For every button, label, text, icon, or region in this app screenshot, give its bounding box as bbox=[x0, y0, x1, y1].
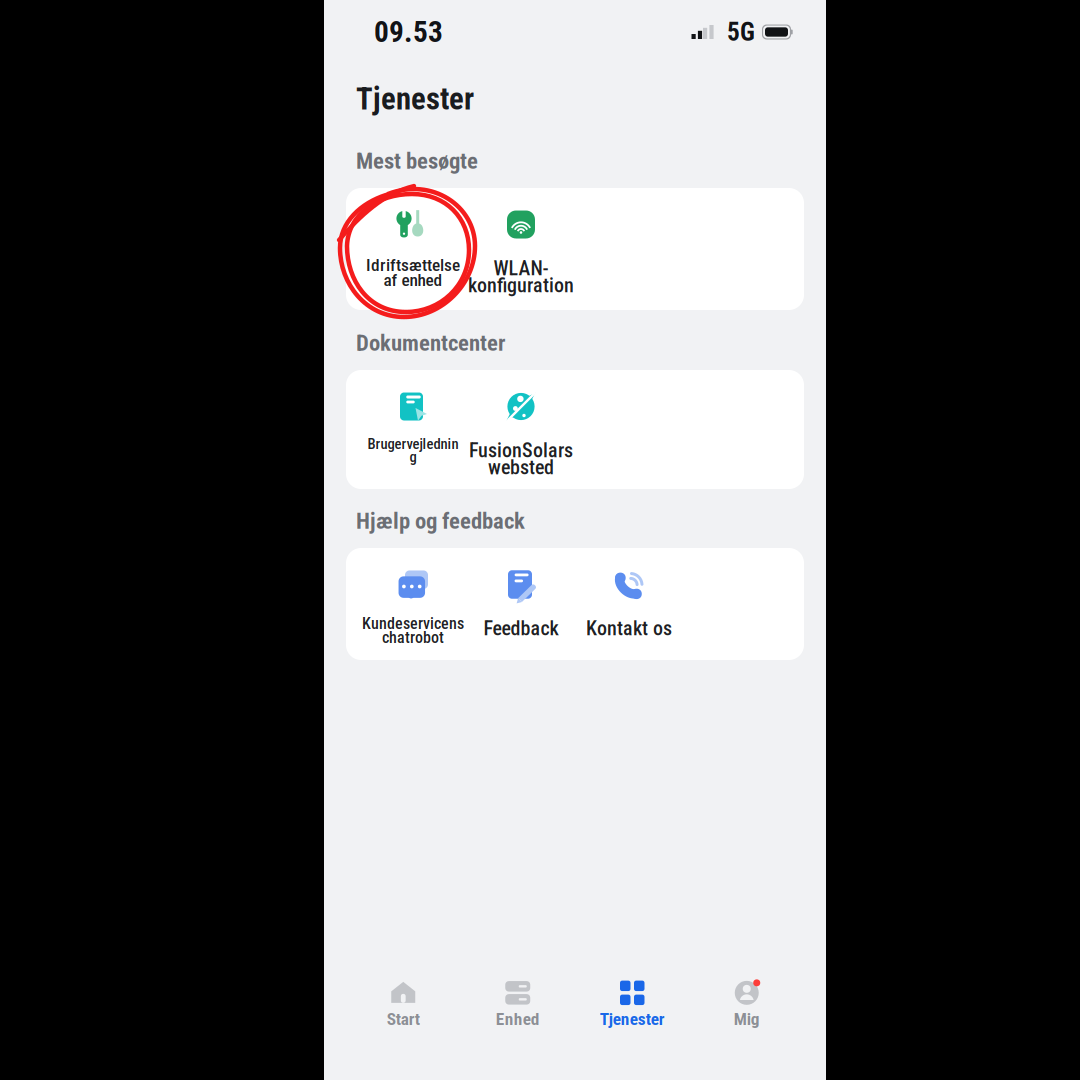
staticText: websted bbox=[488, 456, 554, 479]
button[interactable]: Kontakt os bbox=[575, 548, 683, 660]
button[interactable]: Brugervejlednin bbox=[359, 370, 467, 489]
button[interactable]: Idriftsættelse bbox=[359, 188, 467, 310]
staticText: chatrobot bbox=[382, 628, 444, 647]
button[interactable]: Kundeservicens bbox=[359, 548, 467, 660]
staticText: Enhed bbox=[496, 1009, 540, 1029]
button[interactable]: FusionSolars bbox=[467, 370, 575, 489]
staticText: Tjenester bbox=[356, 81, 474, 117]
staticText: Kundeservicens bbox=[362, 614, 464, 633]
button[interactable]: WLAN- bbox=[467, 188, 575, 310]
staticText: Tjenester bbox=[600, 1009, 665, 1029]
button[interactable]: Feedback bbox=[467, 548, 575, 660]
staticText: konfiguration bbox=[468, 274, 574, 297]
staticText: g bbox=[409, 448, 416, 465]
staticText: Hjælp og feedback bbox=[356, 508, 525, 534]
staticText: af enhed bbox=[383, 270, 442, 290]
button[interactable]: Start bbox=[346, 981, 460, 1029]
staticText: FusionSolars bbox=[469, 439, 573, 462]
button[interactable]: Enhed bbox=[460, 981, 575, 1029]
staticText: Dokumentcenter bbox=[356, 330, 506, 356]
button[interactable]: Tjenester bbox=[575, 981, 689, 1029]
staticText: 5G bbox=[727, 17, 755, 47]
staticText: Idriftsættelse bbox=[366, 255, 460, 275]
button[interactable]: Mig bbox=[689, 981, 804, 1029]
staticText: Kontakt os bbox=[586, 617, 672, 640]
staticText: WLAN- bbox=[493, 257, 548, 280]
staticText: Feedback bbox=[483, 617, 558, 640]
staticText: Brugervejlednin bbox=[367, 435, 458, 452]
staticText: Mig bbox=[734, 1009, 760, 1029]
staticText: 09.53 bbox=[374, 15, 443, 49]
staticText: Mest besøgte bbox=[356, 148, 478, 174]
staticText: Start bbox=[387, 1009, 420, 1029]
